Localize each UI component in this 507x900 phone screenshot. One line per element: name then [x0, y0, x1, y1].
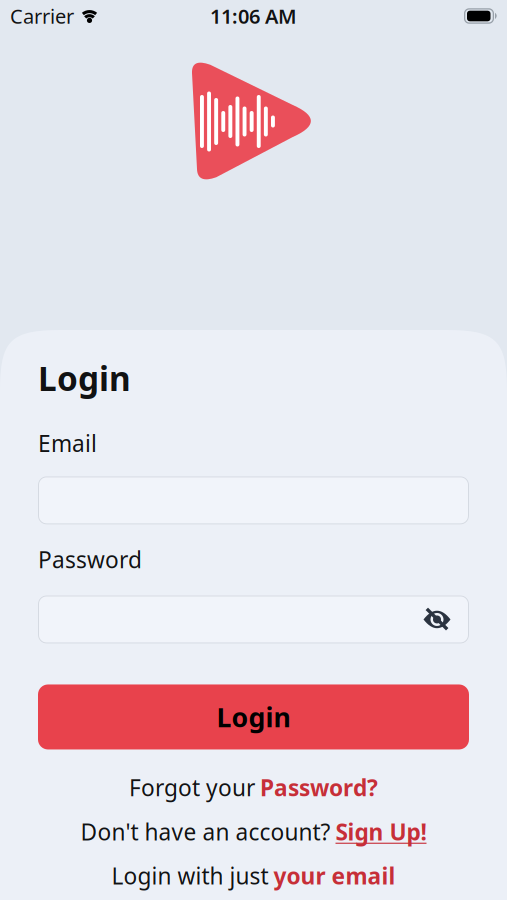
staticText: Email — [38, 428, 97, 458]
button[interactable]: Forgot your — [38, 772, 469, 803]
staticText: Login with just — [111, 861, 268, 891]
staticText: Carrier — [10, 3, 74, 29]
staticText: Sign Up! — [335, 817, 426, 847]
staticText: Forgot your — [129, 772, 255, 803]
button[interactable]: Login — [38, 684, 469, 749]
button[interactable]: Login with just — [38, 861, 469, 891]
button[interactable]: Show password — [423, 607, 469, 631]
staticText: Password? — [260, 772, 378, 803]
staticText: your email — [273, 861, 395, 891]
staticText: Don't have an account? — [80, 817, 330, 847]
staticText: Login — [38, 356, 131, 400]
staticText: Password — [38, 544, 142, 574]
staticText: Login — [216, 699, 290, 735]
button[interactable]: Password — [38, 595, 469, 643]
button[interactable]: Don't have an account? — [38, 817, 469, 847]
button[interactable]: Email — [38, 476, 469, 524]
staticText: 11:06 AM — [210, 3, 297, 29]
